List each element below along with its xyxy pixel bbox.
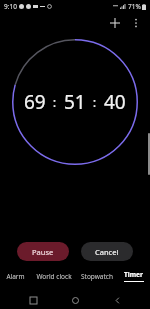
staticText: Alarm bbox=[6, 272, 25, 281]
button[interactable]: Stopwatch bbox=[76, 267, 117, 285]
button[interactable]: Recents bbox=[24, 291, 42, 309]
button[interactable]: Alarm bbox=[0, 267, 31, 285]
staticText: 40 bbox=[104, 89, 126, 115]
staticText: 9:10 bbox=[4, 2, 17, 11]
button[interactable]: More options bbox=[127, 14, 145, 32]
button[interactable]: Timer bbox=[117, 267, 150, 285]
button[interactable]: World clock bbox=[31, 267, 76, 285]
staticText: Pause bbox=[32, 247, 54, 257]
staticText: 71% bbox=[128, 2, 141, 11]
button[interactable]: Add timer bbox=[106, 14, 124, 32]
button[interactable]: Home bbox=[66, 291, 84, 309]
staticText: World clock bbox=[36, 272, 72, 281]
staticText: 69 bbox=[24, 89, 46, 115]
staticText: Stopwatch bbox=[81, 272, 113, 281]
button[interactable]: Back bbox=[108, 291, 126, 309]
staticText: : bbox=[86, 93, 104, 111]
button[interactable]: Pause bbox=[17, 242, 69, 261]
staticText: : bbox=[46, 93, 64, 111]
staticText: Timer bbox=[124, 270, 143, 279]
staticText: Cancel bbox=[95, 247, 119, 257]
button[interactable]: Cancel bbox=[81, 242, 133, 261]
staticText: 51 bbox=[64, 89, 86, 115]
